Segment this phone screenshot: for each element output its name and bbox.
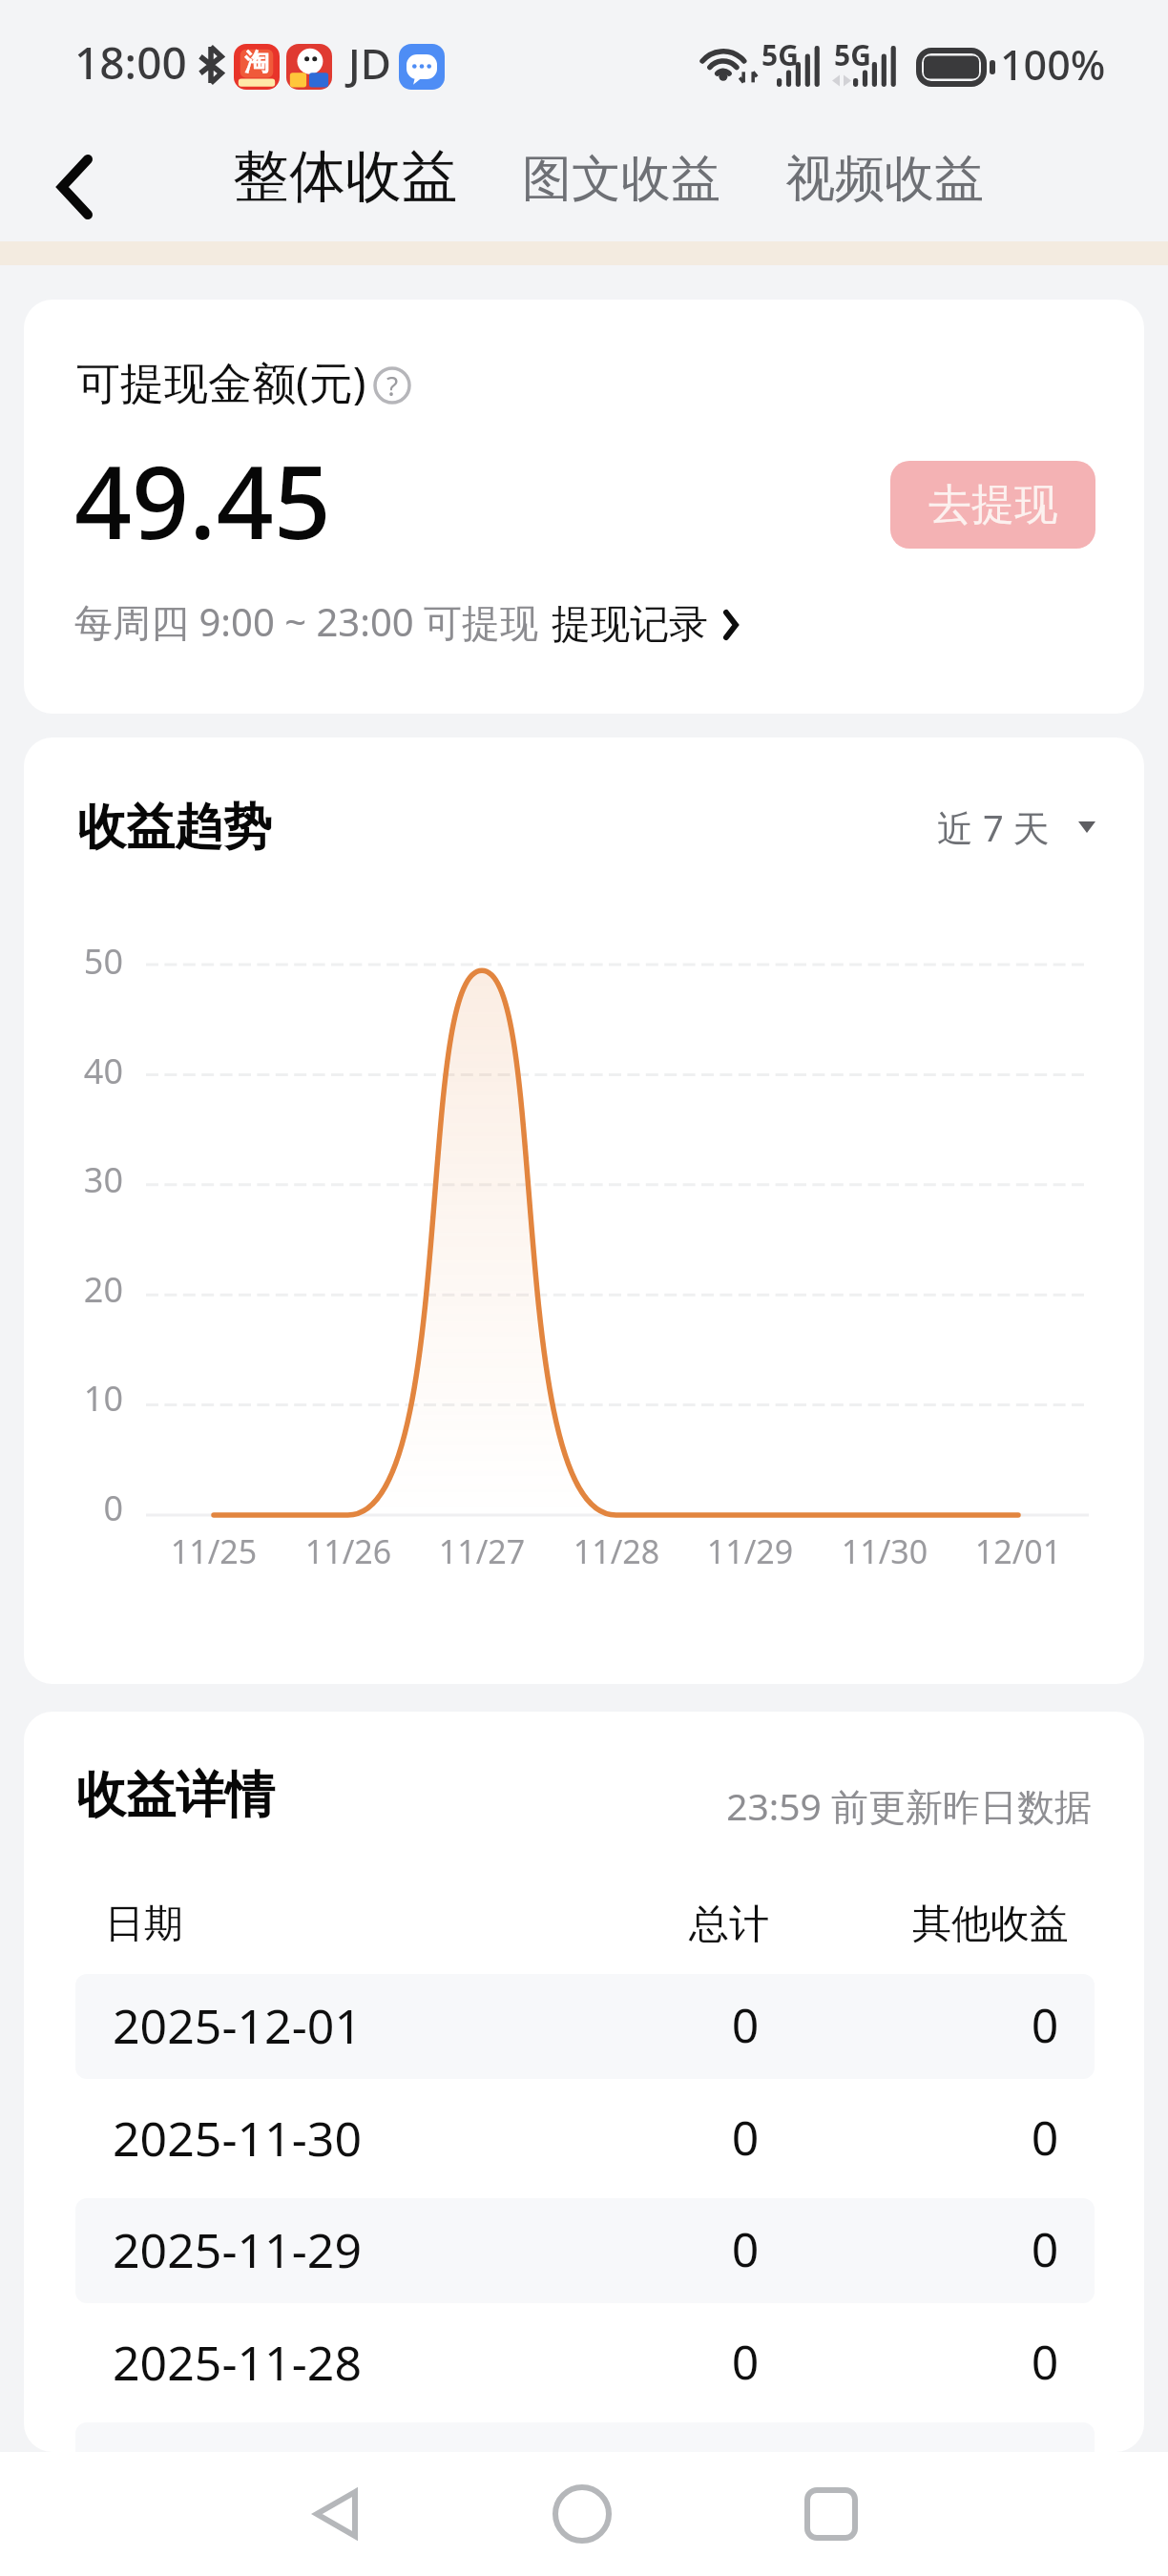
staticText: 100% xyxy=(1000,36,1106,93)
staticText: 0 xyxy=(688,2329,803,2394)
staticText: 11/29 xyxy=(693,1529,807,1573)
button[interactable]: 2025-11-29 xyxy=(75,2198,1095,2303)
staticText: 20 xyxy=(61,1266,123,1313)
button[interactable]: Back xyxy=(31,143,118,231)
staticText: 2025-12-01 xyxy=(113,1993,362,2058)
staticText: 0 xyxy=(61,1485,123,1531)
staticText: 0 xyxy=(988,2105,1095,2170)
staticText: ? xyxy=(386,367,399,404)
button[interactable]: Help xyxy=(373,366,411,405)
staticText: 其他收益 xyxy=(876,1900,1105,1949)
button[interactable]: 整体收益 xyxy=(233,141,458,212)
staticText: 图文收益 xyxy=(522,148,720,211)
staticText: 每周四 9:00 ~ 23:00 可提现 xyxy=(74,595,539,648)
staticText: 2025-11-28 xyxy=(113,2330,362,2395)
staticText: 11/25 xyxy=(156,1529,271,1573)
staticText: 5G xyxy=(834,35,871,74)
staticText: 0 xyxy=(988,2329,1095,2394)
staticText: 11/30 xyxy=(827,1529,942,1573)
button[interactable]: Home xyxy=(525,2457,639,2571)
staticText: 整体收益 xyxy=(233,141,458,212)
staticText: 5G xyxy=(761,35,799,74)
staticText: 日期 xyxy=(105,1900,183,1949)
staticText: 11/27 xyxy=(425,1529,539,1573)
button[interactable]: 提现记录 xyxy=(552,600,739,650)
staticText: 0 xyxy=(688,2105,803,2170)
staticText: 提现记录 xyxy=(552,600,708,650)
button[interactable]: Back xyxy=(279,2457,393,2571)
staticText: 40 xyxy=(61,1048,123,1094)
staticText: 23:59 前更新昨日数据 xyxy=(692,1780,1092,1831)
staticText: 50 xyxy=(61,938,123,985)
staticText: 视频收益 xyxy=(785,148,984,211)
staticText: 30 xyxy=(61,1156,123,1203)
button[interactable]: 2025-12-01 xyxy=(75,1974,1095,2079)
button[interactable]: 近 7 天 xyxy=(937,802,1095,852)
staticText: 总计 xyxy=(615,1900,844,1950)
staticText: 49.45 xyxy=(74,432,331,569)
staticText: 12/01 xyxy=(961,1529,1075,1573)
staticText: 0 xyxy=(688,2216,803,2281)
staticText: 去提现 xyxy=(928,478,1057,532)
button[interactable]: 去提现 xyxy=(890,461,1095,549)
staticText: 收益趋势 xyxy=(77,797,272,858)
staticText: 0 xyxy=(988,1992,1095,2057)
staticText: 11/26 xyxy=(291,1529,406,1573)
staticText: JD xyxy=(348,34,391,92)
staticText: 2025-11-30 xyxy=(113,2106,362,2171)
staticText: 可提现金额(元) xyxy=(76,352,366,412)
staticText: 18:00 xyxy=(74,32,187,93)
button[interactable]: Recents xyxy=(774,2457,888,2571)
button[interactable]: 图文收益 xyxy=(522,148,720,211)
staticText: 2025-11-29 xyxy=(113,2217,362,2282)
button[interactable]: 2025-11-30 xyxy=(75,2087,1095,2192)
staticText: 11/28 xyxy=(559,1529,674,1573)
button[interactable]: 视频收益 xyxy=(785,148,984,211)
staticText: 近 7 天 xyxy=(937,802,1050,852)
staticText: 淘 xyxy=(244,47,269,78)
staticText: 0 xyxy=(688,1992,803,2057)
staticText: 0 xyxy=(988,2216,1095,2281)
staticText: 10 xyxy=(61,1375,123,1422)
staticText: 收益详情 xyxy=(76,1764,275,1827)
button[interactable]: 2025-11-28 xyxy=(75,2311,1095,2416)
